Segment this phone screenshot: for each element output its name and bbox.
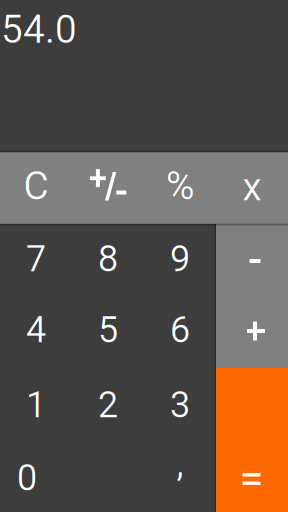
staticText: %	[166, 163, 194, 209]
staticText: 4	[26, 309, 46, 351]
button[interactable]: Plus	[216, 296, 288, 368]
button[interactable]: 2	[72, 368, 144, 440]
button[interactable]: x	[216, 152, 288, 224]
button[interactable]: ,	[144, 440, 216, 512]
button[interactable]: 1	[0, 368, 72, 440]
button[interactable]: 7	[0, 224, 72, 296]
button[interactable]: Minus	[216, 224, 288, 296]
button[interactable]: Toggle sign	[72, 152, 144, 224]
button[interactable]: 3	[144, 368, 216, 440]
button[interactable]: 4	[0, 296, 72, 368]
staticText: 1	[26, 384, 46, 426]
staticText: C	[23, 163, 48, 209]
button[interactable]: %	[144, 152, 216, 224]
button[interactable]: Equals	[216, 368, 288, 512]
button[interactable]: 6	[144, 296, 216, 368]
staticText: 7	[26, 238, 46, 280]
staticText: 6	[170, 309, 190, 351]
staticText: ,	[176, 443, 183, 485]
staticText: 8	[98, 238, 118, 280]
staticText: 3	[170, 384, 190, 426]
staticText: 5	[98, 309, 118, 351]
staticText: 2	[98, 384, 118, 426]
staticText: 0	[17, 457, 37, 499]
button[interactable]: 9	[144, 224, 216, 296]
button[interactable]: 5	[72, 296, 144, 368]
button[interactable]: 8	[72, 224, 144, 296]
staticText: 9	[170, 238, 190, 280]
staticText: x	[242, 164, 261, 210]
button[interactable]: C	[0, 152, 72, 224]
button[interactable]: 0	[0, 440, 72, 512]
staticText: 54.0	[1, 7, 77, 52]
